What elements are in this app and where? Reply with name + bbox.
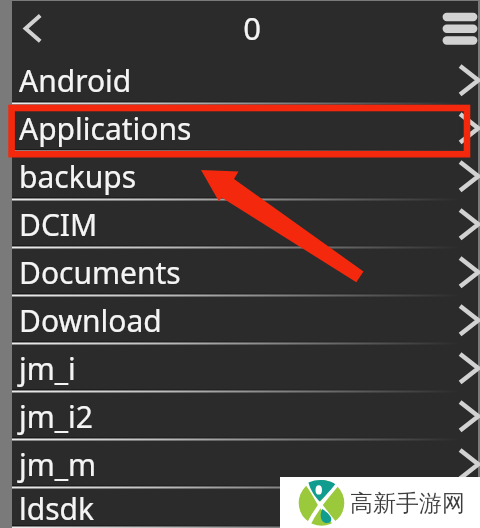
button[interactable]: ldsdk	[12, 488, 478, 528]
staticText: ldsdk	[19, 488, 95, 528]
button[interactable]: Back	[12, 1, 58, 55]
button[interactable]: Documents	[12, 248, 478, 296]
staticText: jm_i	[19, 348, 76, 389]
button[interactable]: DCIM	[12, 200, 478, 248]
button[interactable]: Android	[12, 56, 478, 104]
button[interactable]: Applications	[12, 104, 478, 152]
staticText: DCIM	[19, 204, 98, 245]
staticText: jm_i2	[19, 396, 94, 437]
staticText: jm_m	[19, 444, 97, 485]
button[interactable]: backups	[12, 152, 478, 200]
staticText: Applications	[19, 108, 192, 149]
button[interactable]: Menu	[428, 1, 478, 55]
button[interactable]: jm_i	[12, 344, 478, 392]
staticText: backups	[19, 156, 137, 197]
staticText: Download	[19, 300, 162, 341]
button[interactable]: jm_i2	[12, 392, 478, 440]
staticText: 高新手游网	[350, 489, 465, 518]
staticText: Android	[19, 60, 132, 101]
button[interactable]: Download	[12, 296, 478, 344]
button[interactable]: jm_m	[12, 440, 478, 488]
staticText: Documents	[19, 252, 181, 293]
staticText: 0	[243, 7, 261, 49]
